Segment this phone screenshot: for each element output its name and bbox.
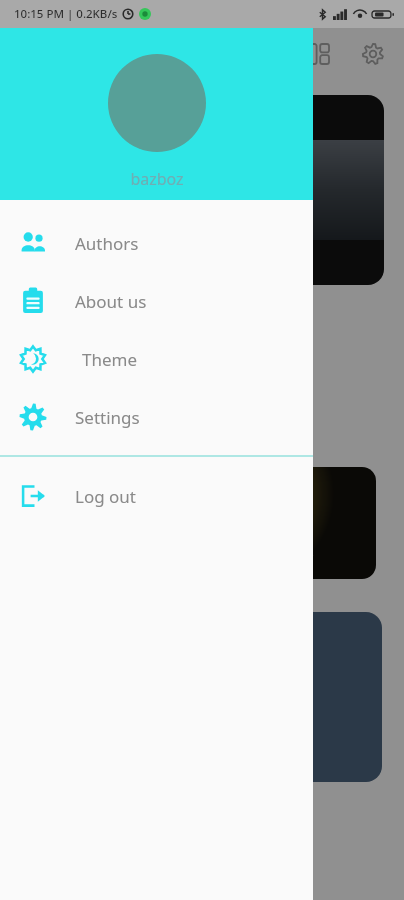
button[interactable]: Settings	[0, 388, 313, 446]
staticText: Authors	[75, 232, 139, 255]
button[interactable]: …ssion	[26, 370, 146, 404]
button[interactable]: …ment of …, Planets, etc	[26, 95, 384, 285]
staticText: …xpansion …on years	[36, 245, 92, 275]
button[interactable]: About us	[0, 272, 313, 330]
staticText: …ic	[26, 307, 46, 325]
staticText: About us	[75, 290, 147, 313]
staticText: bazboz	[130, 168, 184, 190]
staticText: 10:15 PM | 0.2KB/s	[14, 6, 118, 22]
button[interactable]: Dashboard	[302, 37, 336, 71]
staticText: Settings	[75, 406, 140, 429]
button[interactable]	[108, 54, 206, 152]
button[interactable]: Theme	[0, 330, 313, 388]
button[interactable]	[26, 612, 382, 782]
staticText: …ment of …, Planets, etc	[36, 109, 110, 139]
button[interactable]: Log out	[0, 467, 313, 525]
staticText: Log out	[75, 485, 136, 508]
button[interactable]: Settings	[356, 37, 390, 71]
button[interactable]: Authors	[0, 214, 313, 272]
staticText: Theme	[82, 348, 138, 371]
button[interactable]	[26, 467, 376, 579]
